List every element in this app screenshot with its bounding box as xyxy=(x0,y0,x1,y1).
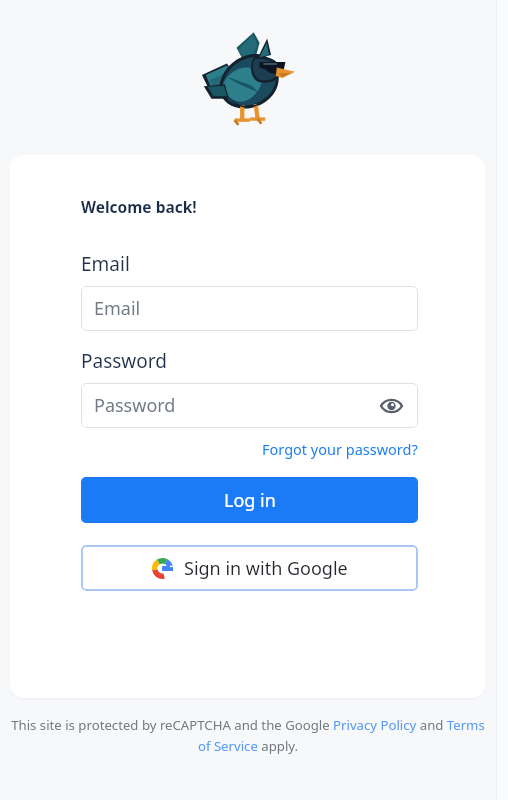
button[interactable]: Show password xyxy=(378,393,404,419)
staticText: Email xyxy=(94,296,141,321)
staticText: Forgot your password? xyxy=(262,439,418,459)
staticText: Password xyxy=(94,393,176,418)
button[interactable]: Forgot your password? xyxy=(81,439,418,459)
staticText: Email xyxy=(81,251,130,277)
staticText: Sign in with Google xyxy=(184,556,348,581)
staticText: Log in xyxy=(224,488,276,513)
button[interactable]: Password xyxy=(81,383,418,428)
button[interactable]: Log in xyxy=(81,477,418,523)
staticText: Password xyxy=(81,348,167,374)
button[interactable]: Email xyxy=(81,286,418,331)
staticText: Welcome back! xyxy=(81,196,197,217)
staticText: This site is protected by reCAPTCHA and … xyxy=(10,716,486,755)
button[interactable]: Sign in with Google xyxy=(81,545,418,591)
